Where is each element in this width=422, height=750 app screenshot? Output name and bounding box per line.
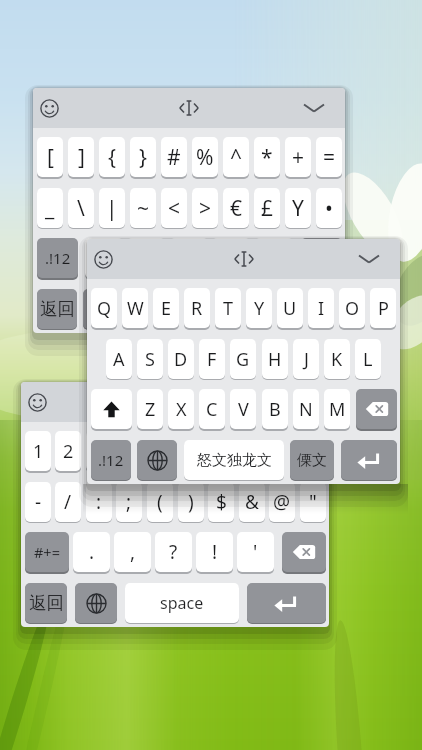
- button[interactable]: =: [316, 137, 342, 177]
- button[interactable]: 8: [239, 431, 265, 471]
- button[interactable]: _: [37, 188, 63, 228]
- button[interactable]: :: [86, 482, 112, 522]
- button[interactable]: 9: [269, 431, 295, 471]
- button[interactable]: space: [129, 289, 280, 329]
- button[interactable]: [137, 440, 177, 480]
- button[interactable]: 2: [55, 431, 81, 471]
- button[interactable]: +: [285, 137, 311, 177]
- button[interactable]: @: [269, 482, 295, 522]
- button[interactable]: !: [212, 238, 250, 278]
- button[interactable]: ": [300, 482, 326, 522]
- button[interactable]: 傈文: [290, 440, 334, 480]
- button[interactable]: A: [106, 339, 132, 379]
- button[interactable]: Y: [246, 288, 272, 328]
- button[interactable]: <: [161, 188, 187, 228]
- button[interactable]: N: [293, 389, 319, 429]
- button[interactable]: 返回: [25, 583, 67, 623]
- button[interactable]: G: [230, 339, 256, 379]
- button[interactable]: [91, 389, 132, 429]
- button[interactable]: [356, 389, 397, 429]
- button[interactable]: C: [199, 389, 225, 429]
- button[interactable]: U: [277, 288, 303, 328]
- button[interactable]: /: [55, 482, 81, 522]
- button[interactable]: X: [168, 389, 194, 429]
- button[interactable]: L: [355, 339, 381, 379]
- button[interactable]: &: [239, 482, 265, 522]
- button[interactable]: 4: [116, 431, 142, 471]
- button[interactable]: K: [324, 339, 350, 379]
- button[interactable]: 1: [25, 431, 51, 471]
- button[interactable]: M: [324, 389, 350, 429]
- button[interactable]: ]: [68, 137, 94, 177]
- button[interactable]: B: [262, 389, 288, 429]
- button[interactable]: -: [25, 482, 51, 522]
- button[interactable]: $: [208, 482, 234, 522]
- button[interactable]: [93, 249, 114, 270]
- button[interactable]: [301, 238, 342, 278]
- button[interactable]: \: [68, 188, 94, 228]
- button[interactable]: [27, 392, 48, 413]
- button[interactable]: (: [147, 482, 173, 522]
- button[interactable]: |: [99, 188, 125, 228]
- button[interactable]: *: [254, 137, 280, 177]
- button[interactable]: [247, 583, 326, 623]
- button[interactable]: R: [184, 288, 210, 328]
- button[interactable]: .!12: [37, 238, 78, 278]
- button[interactable]: [282, 532, 326, 572]
- button[interactable]: [164, 392, 186, 412]
- button[interactable]: J: [293, 339, 319, 379]
- button[interactable]: .: [73, 532, 110, 572]
- button[interactable]: W: [122, 288, 148, 328]
- button[interactable]: .: [85, 238, 123, 278]
- button[interactable]: E: [153, 288, 179, 328]
- button[interactable]: [39, 98, 60, 119]
- button[interactable]: D: [168, 339, 194, 379]
- button[interactable]: Y: [285, 188, 311, 228]
- button[interactable]: >: [192, 188, 218, 228]
- button[interactable]: 5: [147, 431, 173, 471]
- button[interactable]: ;: [116, 482, 142, 522]
- button[interactable]: [178, 98, 200, 118]
- button[interactable]: 怒文独龙文: [184, 440, 284, 480]
- button[interactable]: [233, 249, 255, 269]
- button[interactable]: •: [316, 188, 342, 228]
- button[interactable]: £: [254, 188, 280, 228]
- button[interactable]: [358, 253, 380, 265]
- button[interactable]: I: [308, 288, 334, 328]
- button[interactable]: [287, 396, 309, 408]
- button[interactable]: }: [130, 137, 156, 177]
- button[interactable]: #+=: [25, 532, 69, 572]
- button[interactable]: [83, 289, 123, 329]
- button[interactable]: ?: [155, 532, 192, 572]
- button[interactable]: ': [237, 532, 274, 572]
- button[interactable]: %: [192, 137, 218, 177]
- button[interactable]: {: [99, 137, 125, 177]
- button[interactable]: V: [230, 389, 256, 429]
- button[interactable]: O: [339, 288, 365, 328]
- button[interactable]: 0: [300, 431, 326, 471]
- button[interactable]: ,: [114, 532, 151, 572]
- button[interactable]: P: [370, 288, 396, 328]
- button[interactable]: [75, 583, 117, 623]
- button[interactable]: H: [262, 339, 288, 379]
- button[interactable]: S: [137, 339, 163, 379]
- button[interactable]: [303, 102, 325, 114]
- button[interactable]: #: [161, 137, 187, 177]
- button[interactable]: 返回: [37, 289, 77, 329]
- button[interactable]: 7: [208, 431, 234, 471]
- button[interactable]: ^: [223, 137, 249, 177]
- button[interactable]: €: [223, 188, 249, 228]
- button[interactable]: T: [215, 288, 241, 328]
- button[interactable]: [: [37, 137, 63, 177]
- button[interactable]: Z: [137, 389, 163, 429]
- button[interactable]: 3: [86, 431, 112, 471]
- button[interactable]: Q: [91, 288, 117, 328]
- button[interactable]: ): [178, 482, 204, 522]
- button[interactable]: [341, 440, 397, 480]
- button[interactable]: [286, 289, 342, 329]
- button[interactable]: 6: [178, 431, 204, 471]
- button[interactable]: ~: [130, 188, 156, 228]
